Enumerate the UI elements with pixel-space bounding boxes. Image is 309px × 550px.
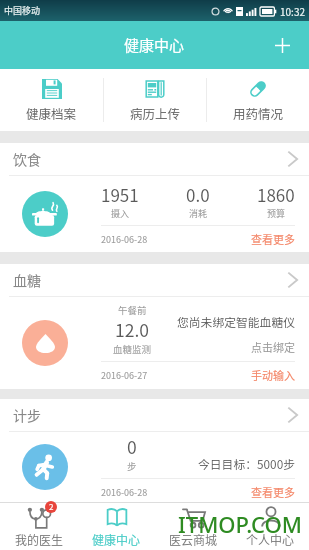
staticText: 手动输入 [251, 367, 295, 383]
button[interactable]: 医云商城 [155, 503, 232, 550]
staticText: 午餐前 [118, 303, 147, 317]
staticText: 病历上传 [130, 104, 181, 122]
staticText: 12.0 [115, 317, 150, 342]
staticText: 查看更多 [251, 231, 295, 247]
button[interactable]: 个人中心 [232, 503, 309, 550]
button[interactable]: Add [267, 30, 297, 60]
staticText: 健康中心 [124, 34, 185, 56]
staticText: 2016-06-28 [101, 233, 148, 246]
staticText: 0.0 [186, 182, 210, 207]
staticText: 血糖监测 [113, 342, 152, 356]
staticText: 摄入 [111, 207, 130, 220]
button[interactable]: 健康档案 [0, 69, 103, 131]
staticText: 消耗 [189, 207, 208, 220]
staticText: 2 [49, 501, 54, 513]
staticText: 计步 [13, 405, 41, 425]
staticText: 预算 [267, 207, 286, 220]
button[interactable]: 计步 [0, 399, 309, 431]
staticText: 健康档案 [26, 104, 77, 122]
staticText: 您尚未绑定智能血糖仪 [177, 313, 295, 330]
staticText: 2016-06-27 [101, 369, 148, 382]
button[interactable]: 用药情况 [207, 69, 309, 131]
staticText: 0 [127, 434, 137, 459]
staticText: 饮食 [13, 149, 41, 169]
button[interactable]: 1951 [0, 176, 309, 252]
button[interactable]: 病历上传 [104, 69, 206, 131]
staticText: 中国移动 [4, 4, 41, 17]
staticText: 我的医生 [15, 531, 64, 548]
button[interactable]: 血糖 [0, 264, 309, 296]
staticText: 2016-06-28 [101, 486, 148, 499]
button[interactable]: 健康中心 [78, 503, 155, 550]
staticText: 10:32 [280, 4, 305, 18]
button[interactable]: 0 [0, 432, 309, 502]
staticText: 查看更多 [251, 484, 295, 500]
staticText: 用药情况 [233, 104, 284, 122]
button[interactable]: 2 [0, 503, 78, 550]
button[interactable]: 饮食 [0, 143, 309, 175]
staticText: ITMOP.COM [178, 509, 303, 539]
staticText: 医云商城 [169, 531, 218, 548]
staticText: 步 [127, 459, 137, 473]
staticText: 健康中心 [92, 531, 141, 548]
staticText: 1951 [101, 182, 139, 207]
button[interactable]: 午餐前 [0, 297, 309, 389]
staticText: 1860 [257, 182, 295, 207]
staticText: 个人中心 [246, 531, 295, 548]
staticText: 点击绑定 [251, 339, 295, 355]
staticText: 血糖 [13, 270, 41, 290]
staticText: 今日目标：5000步 [198, 455, 295, 472]
